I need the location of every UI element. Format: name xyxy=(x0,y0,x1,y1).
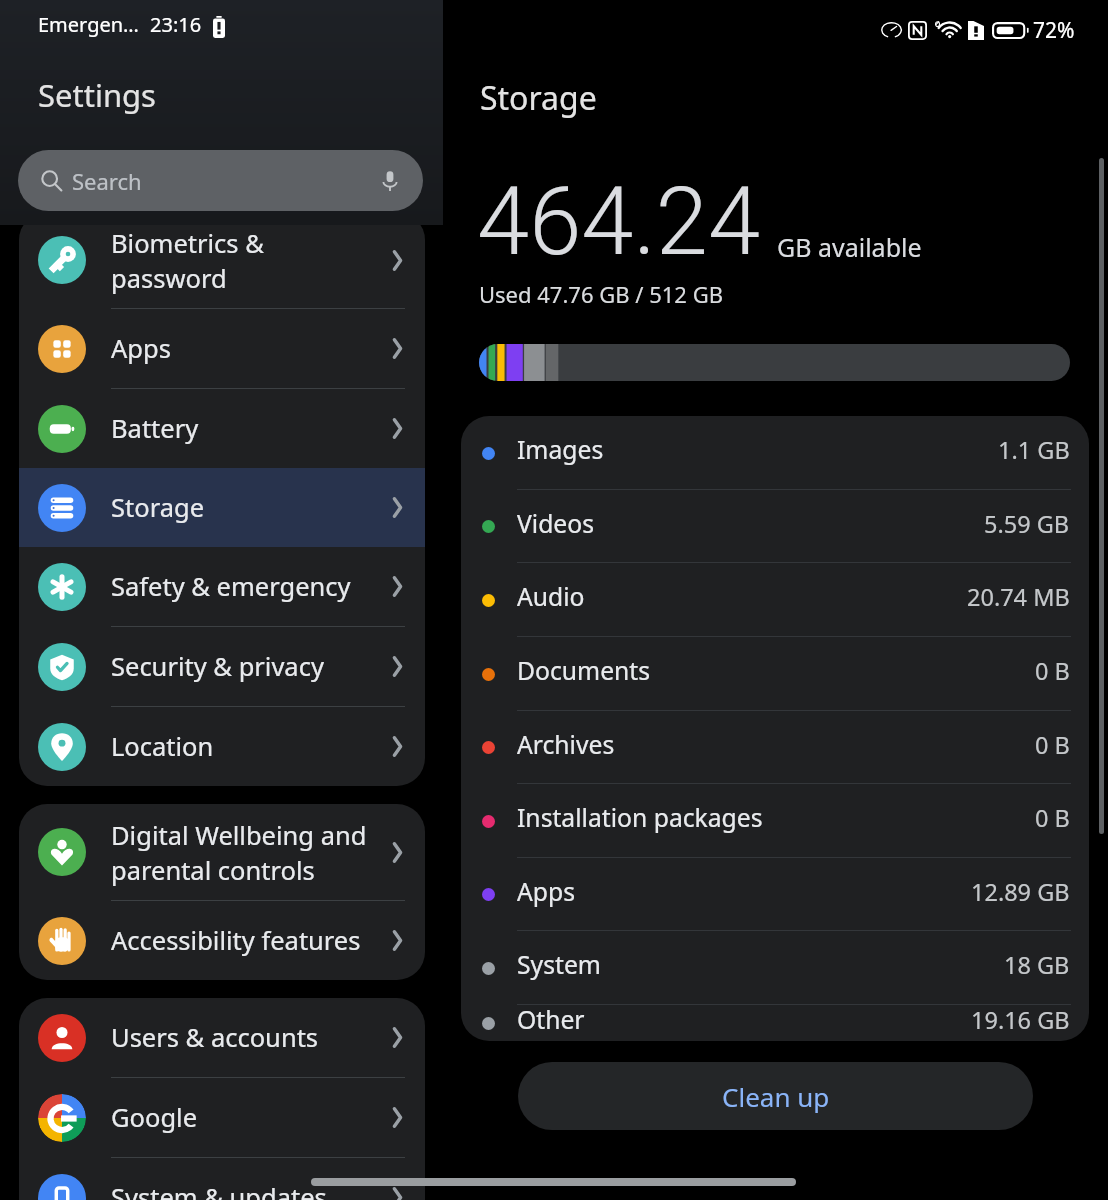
staticText: Safety & emergency xyxy=(111,569,390,604)
staticText: Settings xyxy=(38,74,156,116)
staticText: Biometrics & password xyxy=(111,226,390,295)
staticText: GB available xyxy=(777,230,922,264)
staticText: Used 47.76 GB / 512 GB xyxy=(479,279,723,309)
button[interactable]: Search xyxy=(18,150,423,211)
button[interactable]: Google xyxy=(19,1078,425,1157)
other: Voice search xyxy=(379,170,401,192)
staticText: Digital Wellbeing and parental controls xyxy=(111,818,390,887)
button[interactable]: System & updates xyxy=(19,1158,425,1200)
button[interactable]: Archives xyxy=(461,711,1089,784)
staticText: Apps xyxy=(517,875,575,909)
staticText: Other xyxy=(517,1003,585,1037)
button[interactable]: Digital Wellbeing and parental controls xyxy=(19,804,425,900)
button[interactable]: Location xyxy=(19,707,425,786)
button[interactable]: Apps xyxy=(461,858,1089,931)
staticText: Security & privacy xyxy=(111,649,390,684)
button[interactable]: Installation packages xyxy=(461,784,1089,858)
staticText: 5.59 GB xyxy=(984,508,1070,540)
other: Battery 72 percent xyxy=(992,22,1029,39)
staticText: Images xyxy=(517,433,604,467)
button[interactable]: Images xyxy=(461,416,1089,490)
button[interactable]: Documents xyxy=(461,637,1089,711)
button[interactable]: Clean up xyxy=(518,1062,1033,1130)
staticText: 23:16 xyxy=(150,11,202,38)
staticText: Installation packages xyxy=(517,801,763,835)
staticText: Battery xyxy=(111,411,390,446)
button[interactable]: Videos xyxy=(461,490,1089,563)
staticText: Audio xyxy=(517,580,585,614)
button[interactable]: Biometrics & password xyxy=(19,212,425,308)
staticText: 12.89 GB xyxy=(971,876,1070,908)
staticText: Users & accounts xyxy=(111,1020,390,1055)
other: Data saver xyxy=(881,22,902,38)
staticText: 72% xyxy=(1033,16,1075,45)
staticText: Apps xyxy=(111,331,390,366)
staticText: 18 GB xyxy=(1004,949,1070,981)
staticText: Videos xyxy=(517,507,595,541)
other: NFC xyxy=(908,21,927,40)
staticText: 464.24 xyxy=(477,167,761,277)
staticText: 20.74 MB xyxy=(967,581,1070,613)
staticText: 19.16 GB xyxy=(971,1004,1070,1036)
button[interactable]: Other xyxy=(461,1005,1089,1041)
staticText: Archives xyxy=(517,728,615,762)
staticText: System & updates xyxy=(111,1180,390,1200)
button[interactable]: System xyxy=(461,931,1089,1005)
staticText: System xyxy=(517,948,601,982)
button[interactable]: Battery xyxy=(19,389,425,468)
button[interactable]: Apps xyxy=(19,309,425,388)
staticText: Emergen… xyxy=(38,11,139,38)
other: Wi-Fi xyxy=(934,21,962,40)
staticText: 1.1 GB xyxy=(998,434,1070,466)
staticText: Location xyxy=(111,729,390,764)
button[interactable]: Accessibility features xyxy=(19,901,425,980)
staticText: Clean up xyxy=(722,1079,830,1114)
staticText: 0 B xyxy=(1035,729,1070,761)
button[interactable]: Storage xyxy=(19,468,425,547)
staticText: Google xyxy=(111,1100,390,1135)
staticText: Search xyxy=(72,166,142,196)
other: Battery alert xyxy=(213,16,225,38)
staticText: 0 B xyxy=(1035,655,1070,687)
staticText: Storage xyxy=(480,76,597,120)
button[interactable]: Audio xyxy=(461,563,1089,637)
staticText: Accessibility features xyxy=(111,923,390,958)
staticText: 0 B xyxy=(1035,802,1070,834)
other: No SIM xyxy=(968,21,984,40)
button[interactable]: Security & privacy xyxy=(19,627,425,706)
staticText: Storage xyxy=(111,490,390,525)
button[interactable]: Safety & emergency xyxy=(19,547,425,626)
staticText: Documents xyxy=(517,654,651,688)
button[interactable]: Users & accounts xyxy=(19,998,425,1077)
